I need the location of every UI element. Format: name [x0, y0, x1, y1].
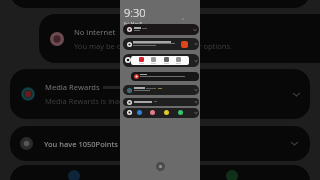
button[interactable]: Expand: [123, 38, 199, 50]
staticText: Fri, Mar 8: [124, 21, 142, 26]
button[interactable]: Expand: [123, 85, 199, 95]
button[interactable]: Expand: [123, 98, 199, 106]
other: Expand: [194, 42, 198, 46]
staticText: 9:30: [124, 5, 146, 20]
button[interactable]: [131, 72, 199, 81]
button[interactable]: Expand: [123, 24, 199, 35]
button[interactable]: Media Rewards: [10, 69, 310, 119]
button[interactable]: [131, 56, 189, 65]
button[interactable]: Record: [156, 162, 165, 171]
other: Expand: [194, 88, 198, 92]
other: Expand: [194, 59, 198, 63]
staticText: Media Rewards is inactive: [45, 96, 136, 106]
button[interactable]: Expand: [123, 54, 199, 67]
other: Expand: [194, 111, 198, 115]
other: Expand: [289, 138, 300, 149]
other: Expand: [291, 89, 302, 100]
button[interactable]: No internet: [39, 14, 320, 63]
staticText: No internet: [74, 27, 116, 37]
button[interactable]: You have 1050Points: [10, 126, 310, 161]
other: Expand: [194, 100, 198, 104]
staticText: Media Rewards: [45, 82, 100, 92]
other: Expand: [193, 28, 197, 32]
button[interactable]: [10, 165, 310, 180]
button[interactable]: Expand: [123, 108, 199, 118]
button[interactable]: [10, 0, 310, 8]
staticText: You may be offline. Touch & hold for opt…: [74, 41, 233, 51]
staticText: You have 1050Points: [44, 139, 119, 149]
